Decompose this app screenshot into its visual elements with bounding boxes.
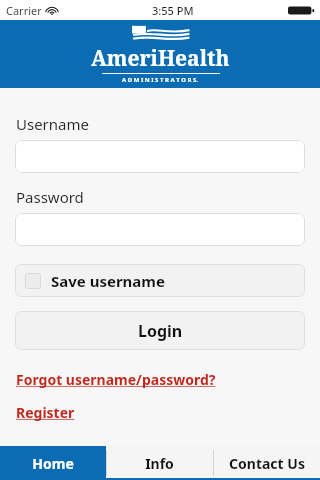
button[interactable] [15, 140, 305, 173]
button[interactable]: Forgot username/password? [16, 370, 216, 389]
button[interactable]: Contact Us [213, 446, 320, 480]
staticText: Carrier [6, 3, 42, 18]
staticText: Forgot username/password? [16, 370, 216, 389]
staticText: Save username [51, 271, 165, 291]
staticText: A D M I N I S T R A T O R S. [122, 76, 199, 84]
staticText: Password [16, 187, 84, 207]
staticText: Register [16, 403, 75, 422]
staticText: Login [138, 320, 183, 342]
button[interactable]: Home [0, 446, 106, 480]
staticText: Contact Us [229, 454, 305, 473]
button[interactable]: Login [15, 311, 305, 350]
staticText: Info [145, 454, 174, 473]
button[interactable]: Info [106, 446, 213, 480]
staticText: 3:55 PM [152, 3, 194, 18]
button[interactable]: Register [16, 403, 75, 422]
staticText: Username [16, 114, 89, 134]
staticText: AmeriHealth [91, 44, 230, 73]
button[interactable]: Save username [15, 264, 305, 297]
staticText: Home [32, 454, 74, 473]
button[interactable] [15, 213, 305, 246]
